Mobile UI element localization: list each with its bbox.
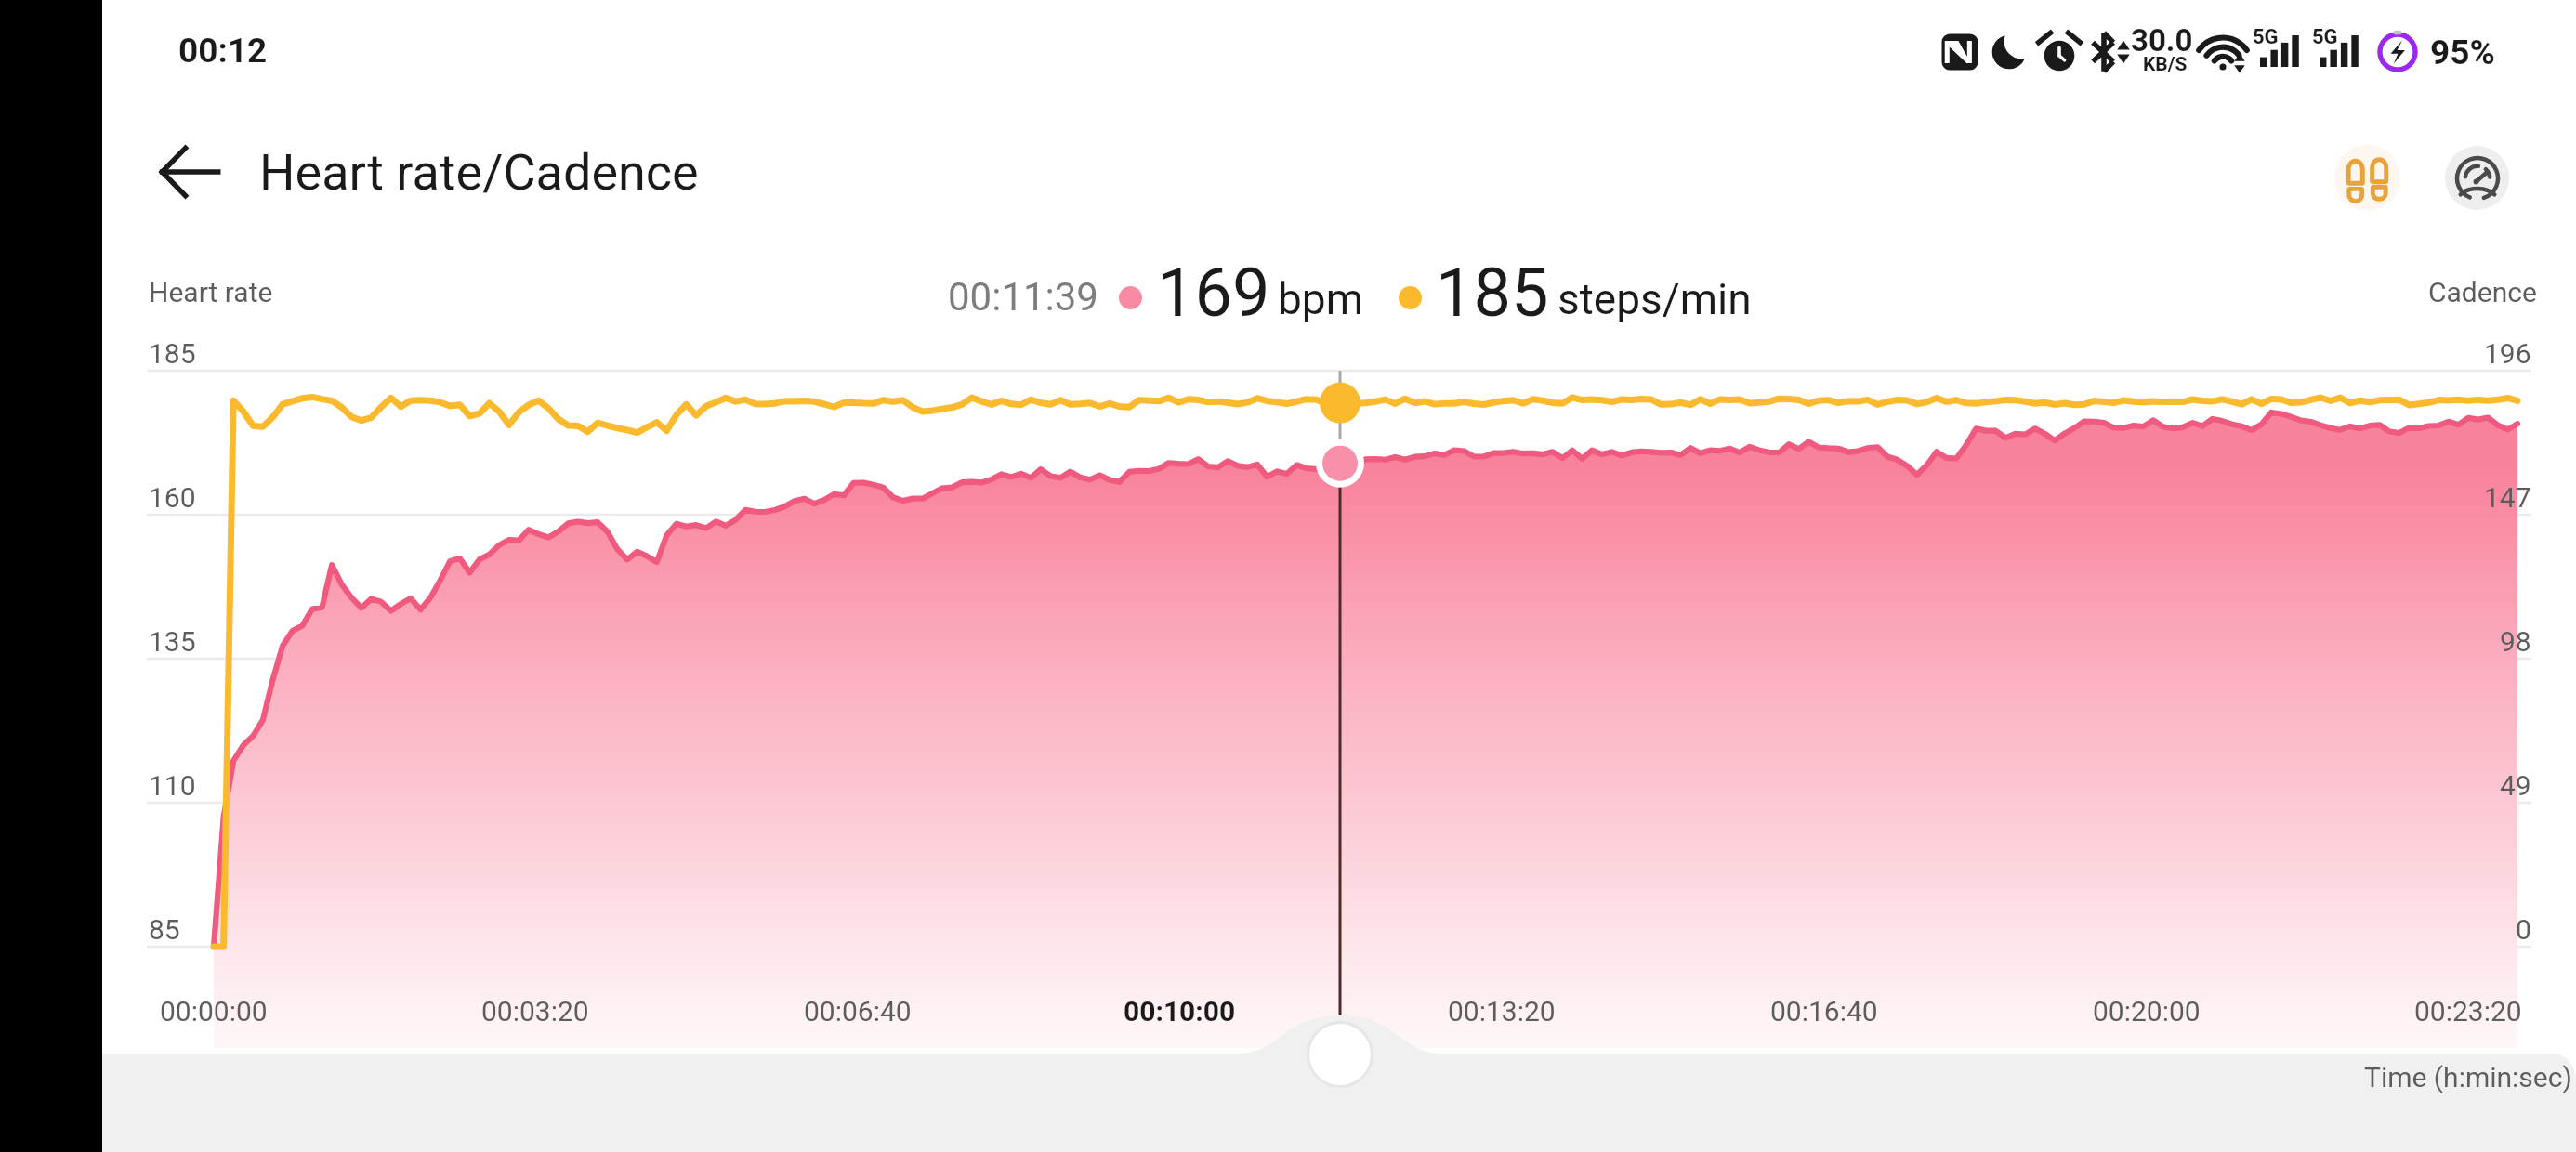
staticText: 00:11:39: [948, 274, 1098, 320]
staticText: 95%: [2430, 33, 2495, 72]
staticText: 169: [1157, 254, 1270, 332]
staticText: 85: [149, 913, 180, 946]
button[interactable]: Back: [147, 129, 232, 215]
button[interactable]: Cadence: [2334, 145, 2400, 211]
staticText: 30.0: [2131, 22, 2193, 59]
staticText: 5G: [2253, 25, 2279, 49]
staticText: 110: [149, 769, 196, 802]
staticText: 5G: [2312, 25, 2338, 49]
staticText: bpm: [1278, 274, 1363, 324]
staticText: Heart rate: [149, 276, 273, 308]
staticText: 00:16:40: [1770, 995, 1878, 1028]
button[interactable]: Speed: [2445, 146, 2509, 210]
staticText: KB/S: [2143, 53, 2188, 76]
staticText: 98: [2500, 625, 2531, 658]
staticText: Cadence: [2428, 276, 2537, 308]
staticText: 147: [2484, 481, 2531, 514]
staticText: 135: [149, 625, 196, 658]
staticText: 49: [2500, 769, 2531, 802]
staticText: Heart rate/Cadence: [259, 143, 699, 202]
staticText: Time (h:min:sec): [2364, 1061, 2572, 1093]
staticText: 185: [1436, 254, 1549, 332]
staticText: 00:23:20: [2414, 995, 2522, 1028]
staticText: 00:13:20: [1448, 995, 1556, 1028]
staticText: 00:03:20: [481, 995, 589, 1028]
staticText: 00:10:00: [1124, 995, 1236, 1028]
staticText: 00:20:00: [2093, 995, 2201, 1028]
staticText: 185: [149, 337, 196, 370]
staticText: 160: [149, 481, 196, 514]
staticText: 00:12: [178, 31, 268, 71]
staticText: 196: [2484, 337, 2531, 370]
staticText: 00:06:40: [804, 995, 912, 1028]
button[interactable]: Heart rate/Cadence: [259, 143, 699, 202]
staticText: steps/min: [1557, 274, 1752, 324]
staticText: 0: [2516, 913, 2531, 946]
staticText: 00:00:00: [160, 995, 268, 1028]
